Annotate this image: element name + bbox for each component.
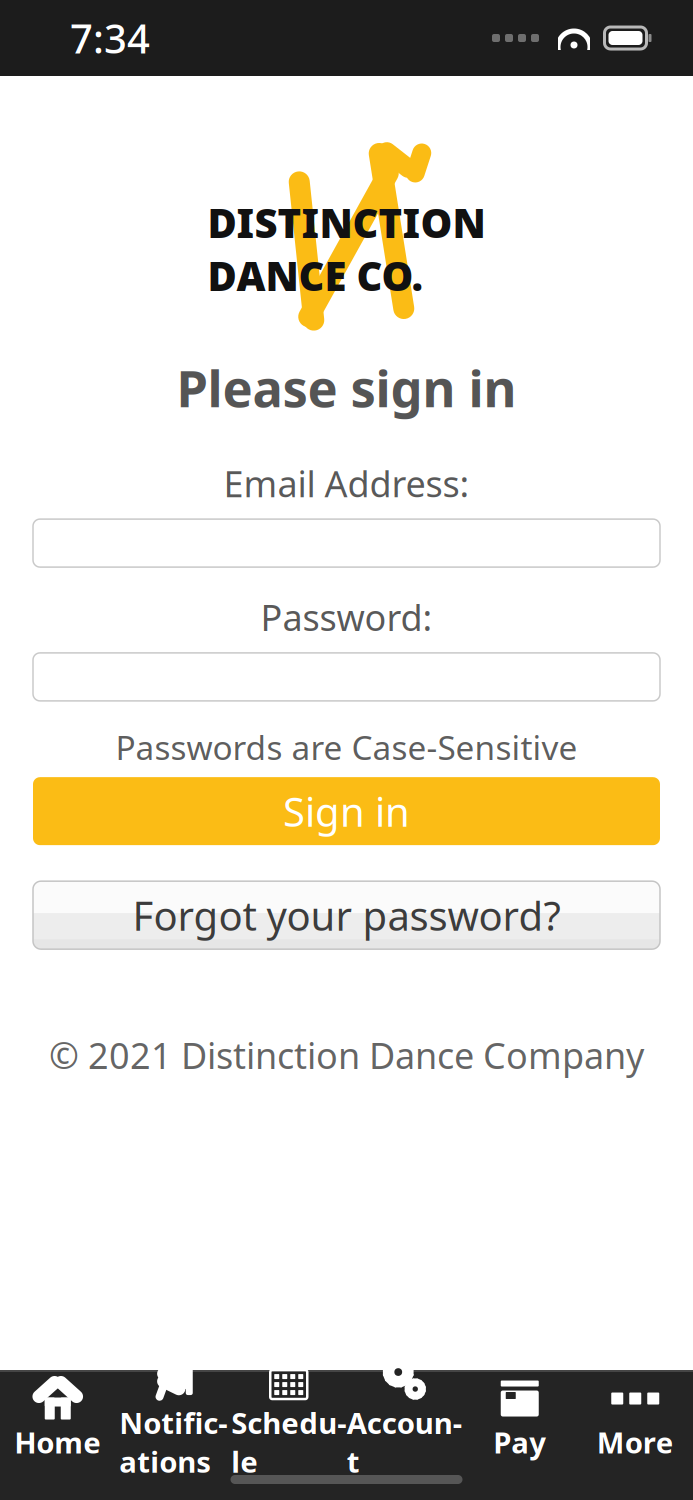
staticText: Email Address: [223, 459, 469, 507]
staticText: Passwords are Case-Sensitive [115, 725, 577, 769]
staticText: Please sign in [176, 354, 516, 421]
staticText: Account [347, 1403, 462, 1481]
staticText: Schedule [231, 1403, 346, 1481]
staticText: Home [14, 1422, 101, 1461]
button[interactable]: Account [346, 1376, 462, 1462]
button[interactable]: Home [0, 1376, 115, 1462]
staticText: Pay [493, 1422, 546, 1461]
button[interactable]: Sign in [33, 777, 660, 845]
button[interactable]: Pay [462, 1376, 577, 1462]
button[interactable]: Forgot your password? [33, 881, 660, 949]
staticText: DISTINCTION DANCE CO. [207, 196, 485, 302]
staticText: Password: [260, 593, 432, 641]
button[interactable]: Schedule [231, 1376, 346, 1462]
staticText: Sign in [283, 785, 410, 838]
button[interactable]: More [577, 1376, 693, 1462]
staticText: 7:34 [70, 11, 150, 64]
staticText: More [597, 1422, 674, 1461]
staticText: © 2021 Distinction Dance Company [49, 1031, 644, 1079]
staticText: Notifications [119, 1403, 227, 1481]
button[interactable]: Notifications [115, 1376, 231, 1462]
staticText: Forgot your password? [132, 889, 560, 942]
